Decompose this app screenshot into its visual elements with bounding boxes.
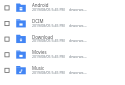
button[interactable]: Select Android <box>2 3 11 12</box>
staticText: drwxrwx--- <box>69 54 87 59</box>
staticText: Movies <box>32 49 47 55</box>
staticText: 2019/08/05 5:45 PM <box>32 38 65 43</box>
button[interactable]: Select Movies <box>0 46 125 62</box>
staticText: DCIM <box>32 18 44 24</box>
staticText: 2019/08/05 5:45 PM <box>32 7 65 12</box>
staticText: Music <box>32 65 45 71</box>
staticText: drwxrwx--- <box>69 7 87 12</box>
staticText: 2019/08/05 5:45 PM <box>32 23 65 28</box>
staticText: drwxrwx--- <box>69 38 87 43</box>
staticText: drwxrwx--- <box>69 70 87 75</box>
button[interactable]: Select Android <box>0 0 125 15</box>
button[interactable]: Select DCIM <box>2 19 11 28</box>
button[interactable]: Select Movies <box>2 50 11 59</box>
staticText: 2019/08/05 5:45 PM <box>32 54 65 59</box>
button[interactable]: Select Music <box>0 62 125 78</box>
staticText: drwxrwx--- <box>69 23 87 28</box>
button[interactable]: Select Download <box>0 31 125 47</box>
button[interactable]: Select Music <box>2 66 11 75</box>
button[interactable]: Select Download <box>2 35 11 44</box>
button[interactable]: Select DCIM <box>0 15 125 31</box>
staticText: 2019/08/05 5:45 PM <box>32 70 65 75</box>
staticText: Download <box>32 34 53 40</box>
staticText: Android <box>32 2 49 8</box>
